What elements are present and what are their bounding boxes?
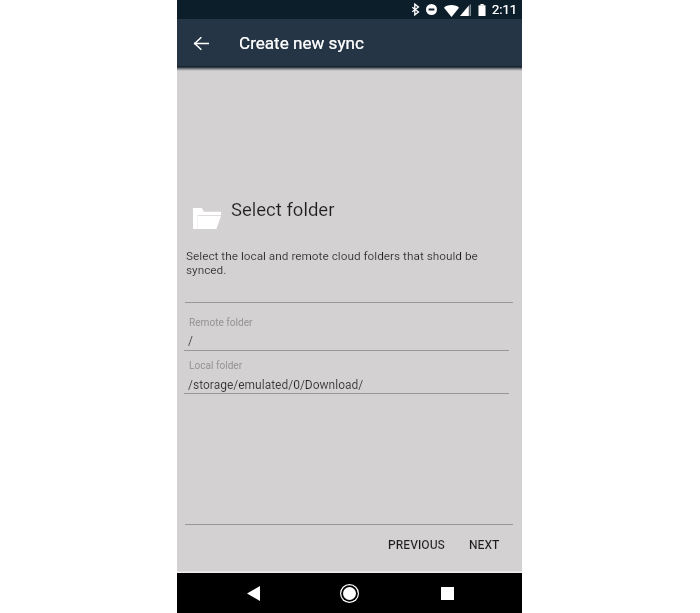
button[interactable]: Home	[322, 573, 377, 613]
staticText: Remote folder	[189, 317, 253, 329]
staticText: /	[188, 334, 193, 348]
button[interactable]: Back	[226, 573, 280, 613]
button[interactable]: Remote folder	[177, 303, 522, 351]
staticText: NEXT	[469, 538, 500, 552]
button[interactable]: NEXT	[461, 530, 508, 560]
staticText: Local folder	[189, 360, 243, 372]
button[interactable]: Back	[181, 23, 221, 63]
staticText: Select folder	[231, 199, 335, 221]
button[interactable]: PREVIOUS	[380, 530, 453, 560]
staticText: Create new sync	[239, 33, 364, 53]
staticText: 2:11	[492, 2, 518, 17]
staticText: Select the local and remote cloud folder…	[186, 249, 486, 277]
staticText: PREVIOUS	[388, 538, 445, 552]
staticText: /storage/emulated/0/Download/	[188, 378, 364, 392]
button[interactable]: Local folder	[177, 351, 522, 394]
button[interactable]: Recent apps	[420, 573, 475, 613]
